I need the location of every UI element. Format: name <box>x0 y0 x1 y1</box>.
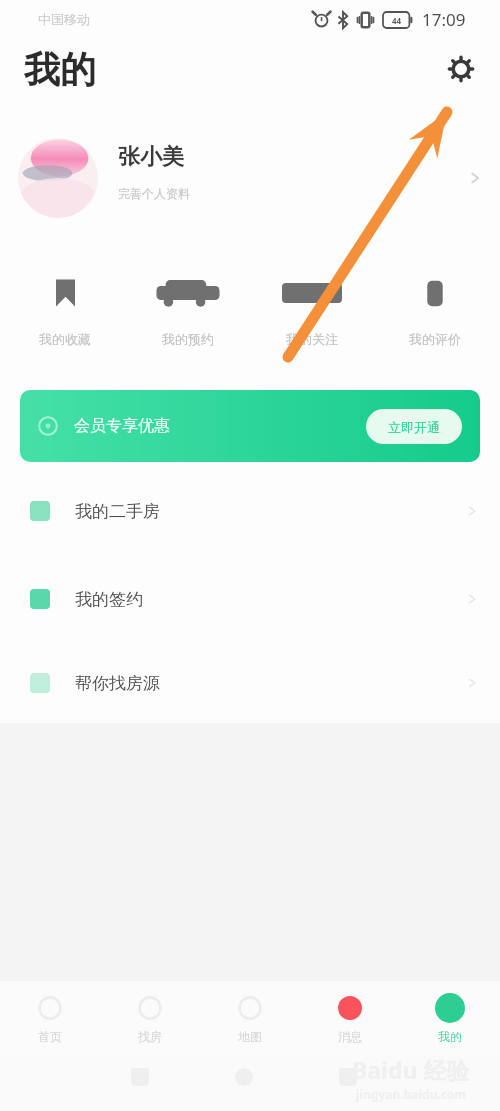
staticText: 我的评价 <box>409 331 461 347</box>
staticText: 我的 <box>24 47 96 92</box>
button[interactable]: Settings <box>446 54 476 84</box>
staticText: 帮你找房源 <box>75 673 160 694</box>
staticText: 我的关注 <box>286 331 338 347</box>
button[interactable]: 张小美 <box>0 100 500 222</box>
button[interactable]: 消息 <box>300 985 400 1052</box>
button[interactable]: 我的收藏 <box>6 276 124 347</box>
staticText: 完善个人资料 <box>118 186 190 201</box>
staticText: 我的 <box>438 1029 462 1044</box>
staticText: Baidu 经验 <box>352 1054 470 1085</box>
staticText: 立即开通 <box>388 419 440 435</box>
button[interactable]: 我的预约 <box>129 276 247 347</box>
button[interactable]: 我的二手房 <box>0 467 500 555</box>
staticText: 张小美 <box>118 143 184 171</box>
staticText: 地图 <box>238 1029 262 1044</box>
button[interactable]: 我的关注 <box>253 276 371 347</box>
staticText: 首页 <box>38 1029 62 1044</box>
staticText: 我的预约 <box>162 331 214 347</box>
button[interactable]: 我的评价 <box>376 276 494 347</box>
button[interactable]: 我的 <box>400 985 500 1052</box>
staticText: 44 <box>392 15 402 26</box>
button[interactable]: 首页 <box>0 985 100 1052</box>
staticText: 会员专享优惠 <box>74 416 170 436</box>
staticText: 中国移动 <box>38 11 90 27</box>
staticText: 我的二手房 <box>75 501 160 522</box>
staticText: 我的签约 <box>75 589 143 610</box>
button[interactable]: 我的签约 <box>0 555 500 643</box>
staticText: 找房 <box>138 1029 162 1044</box>
staticText: 17:09 <box>422 8 466 31</box>
button[interactable]: 立即开通 <box>366 409 462 444</box>
staticText: 我的收藏 <box>39 331 91 347</box>
button[interactable]: 帮你找房源 <box>0 643 500 723</box>
button[interactable]: 找房 <box>100 985 200 1052</box>
staticText: 消息 <box>338 1029 362 1044</box>
staticText: jingyan.baidu.com <box>356 1086 467 1102</box>
button[interactable]: 会员专享优惠 <box>20 390 480 462</box>
button[interactable]: 地图 <box>200 985 300 1052</box>
